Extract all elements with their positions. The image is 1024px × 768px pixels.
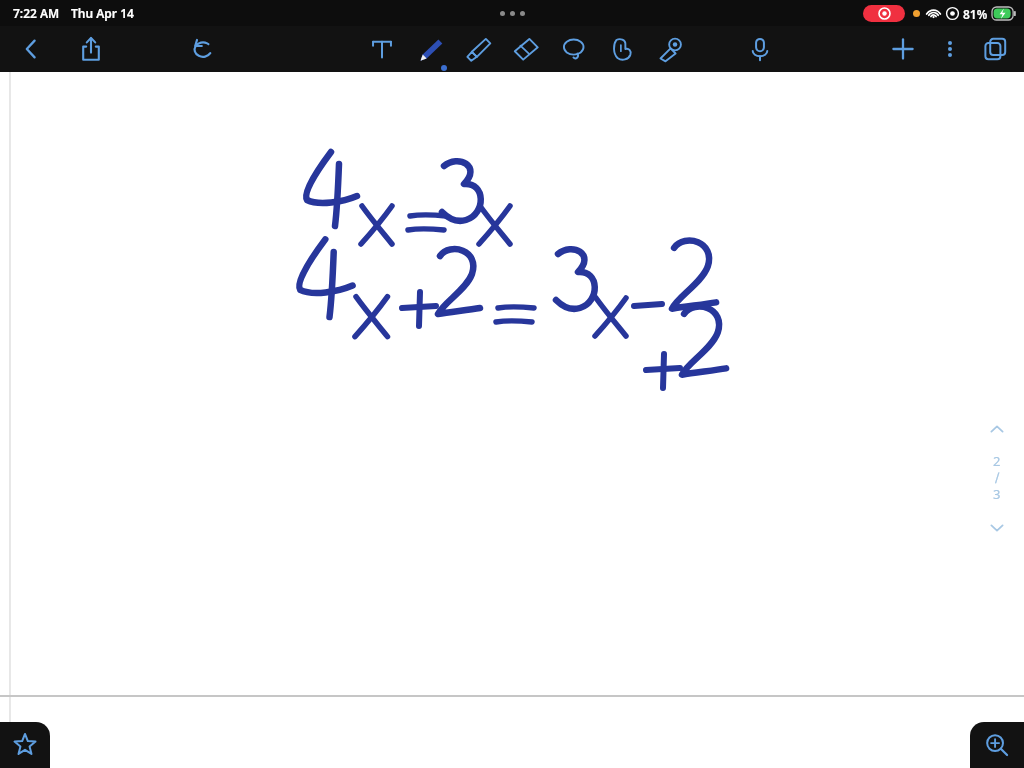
- button[interactable]: Previous page: [984, 416, 1010, 442]
- button[interactable]: Pages: [976, 30, 1014, 68]
- button[interactable]: Undo: [184, 30, 222, 68]
- button[interactable]: Share: [72, 30, 110, 68]
- button[interactable]: Eraser: [508, 31, 544, 67]
- staticText: 2: [993, 452, 1001, 470]
- button[interactable]: More options: [934, 33, 966, 65]
- button[interactable]: Add: [884, 30, 922, 68]
- staticText: 81%: [963, 6, 988, 22]
- button[interactable]: Pen tool: [412, 31, 448, 67]
- staticText: Thu Apr 14: [71, 5, 134, 21]
- button[interactable]: Next page: [984, 515, 1010, 541]
- staticText: ∕: [995, 470, 1000, 485]
- staticText: 3: [993, 485, 1001, 503]
- button[interactable]: Microphone: [742, 31, 778, 67]
- button[interactable]: Zoom in: [970, 722, 1024, 768]
- button[interactable]: Lasso: [556, 31, 592, 67]
- staticText: 7:22 AM: [13, 5, 60, 21]
- button[interactable]: Favorite: [0, 722, 50, 768]
- button[interactable]: Back: [12, 30, 50, 68]
- button[interactable]: Highlighter: [460, 31, 496, 67]
- button[interactable]: Hand: [604, 31, 640, 67]
- button[interactable]: Text tool: [364, 31, 400, 67]
- button[interactable]: Laser pointer: [652, 31, 688, 67]
